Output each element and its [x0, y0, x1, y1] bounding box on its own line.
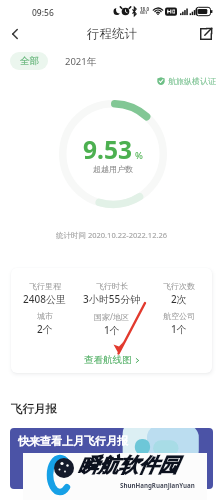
staticText: % [135, 149, 143, 162]
staticText: 飞行次数 [163, 281, 195, 291]
staticText: 2408公里 [23, 292, 66, 306]
staticText: 瞬航软件园 [78, 453, 178, 478]
staticText: 航空公司 [163, 311, 195, 321]
button[interactable]: 快来查看上月飞行月报 [10, 428, 213, 489]
staticText: 航旅纵横认证 [168, 76, 216, 86]
staticText: 2个 [37, 322, 53, 336]
staticText: 全部 [20, 55, 39, 67]
staticText: 城市 [37, 311, 53, 321]
button[interactable]: 查看航线图 [11, 347, 212, 373]
staticText: 飞行时长 [96, 281, 128, 291]
staticText: ShunHangRuanJianYuan [120, 481, 195, 489]
staticText: 2次 [171, 292, 187, 306]
staticText: 国家/地区 [94, 311, 129, 322]
button[interactable]: 全部 [10, 52, 48, 70]
button[interactable]: Share [193, 21, 219, 47]
staticText: 行程统计 [87, 26, 137, 42]
staticText: 1个 [104, 323, 120, 337]
staticText: 2021年 [65, 55, 97, 68]
staticText: 查看航线图 [84, 354, 132, 366]
staticText: 1个 [171, 322, 187, 336]
staticText: 飞行月报 [11, 402, 57, 416]
button[interactable]: Back [2, 21, 28, 47]
staticText: 飞行里程 [29, 281, 61, 291]
staticText: 统计时间 2020.10.22-2022.12.26 [0, 230, 223, 240]
staticText: 9.53 [83, 133, 132, 166]
staticText: KB/S [140, 11, 148, 15]
staticText: 超越用户数 [59, 164, 167, 174]
button[interactable]: 2021年 [48, 52, 107, 70]
staticText: 18.0 [140, 6, 149, 12]
staticText: 3小时55分钟 [83, 292, 141, 306]
staticText: 快来查看上月飞行月报 [18, 434, 128, 448]
staticText: 09:56 [32, 7, 54, 19]
